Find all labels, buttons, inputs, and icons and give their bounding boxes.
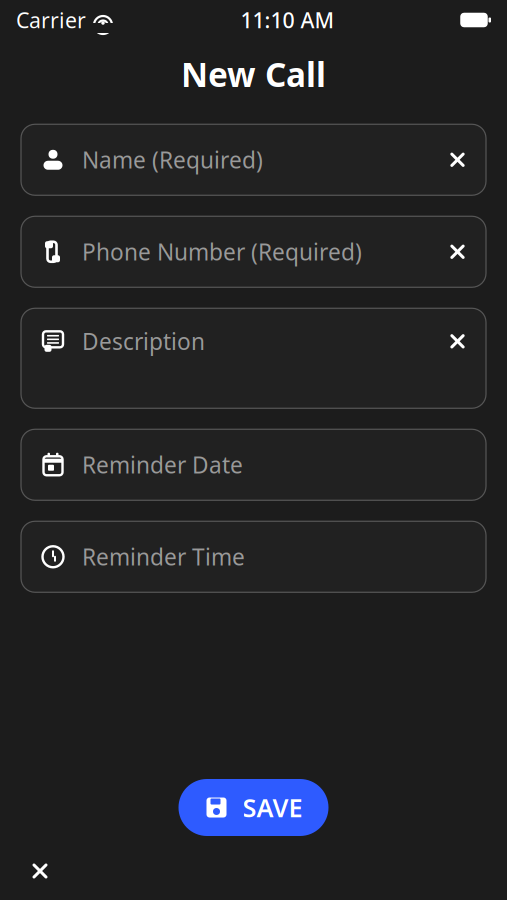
button[interactable]: Close [19,850,61,892]
staticText: Reminder Time [82,542,245,572]
staticText: Carrier [16,6,86,34]
button[interactable]: Reminder Date [21,429,486,500]
staticText: Reminder Date [82,450,243,480]
staticText: Name (Required) [82,145,263,175]
button[interactable]: Description [21,308,486,408]
button[interactable]: Name (Required) [21,124,486,195]
button[interactable]: Reminder Time [21,521,486,592]
button[interactable]: Phone Number (Required) [21,216,486,287]
staticText: Phone Number (Required) [82,237,362,267]
staticText: 11:10 AM [240,6,334,34]
staticText: SAVE [242,791,302,824]
button[interactable]: SAVE [178,779,328,836]
staticText: New Call [181,52,326,96]
staticText: Description [82,326,205,356]
